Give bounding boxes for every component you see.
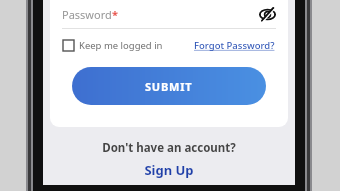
button[interactable]: SUBMIT (72, 67, 266, 105)
button[interactable]: Sign Up (144, 161, 194, 179)
staticText: Keep me logged in (79, 39, 163, 52)
staticText: Sign Up (144, 161, 194, 179)
button[interactable]: Keep me logged in (63, 39, 163, 52)
staticText: * (112, 7, 118, 22)
staticText: Password (62, 7, 112, 22)
staticText: Don't have an account? (102, 140, 236, 156)
staticText: SUBMIT (145, 79, 193, 94)
button[interactable]: Show password (256, 3, 278, 25)
staticText: Forgot Password? (194, 39, 275, 52)
button[interactable]: Forgot Password? (194, 39, 275, 52)
